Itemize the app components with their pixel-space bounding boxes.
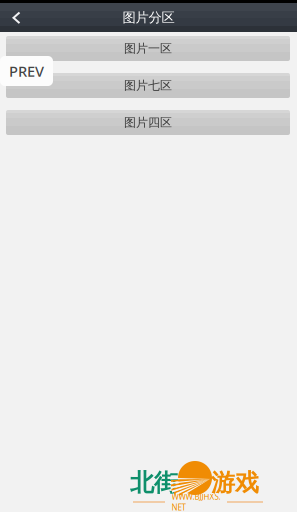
- staticText: 图片分区: [122, 9, 174, 26]
- staticText: 图片七区: [124, 78, 172, 93]
- staticText: 北街: [130, 468, 178, 497]
- button[interactable]: Back: [0, 3, 40, 32]
- button[interactable]: PREV: [0, 56, 53, 86]
- staticText: WWW.BJJHXS.NET: [171, 491, 220, 512]
- button[interactable]: 图片一区: [6, 36, 290, 61]
- button[interactable]: 图片四区: [6, 110, 290, 135]
- staticText: 图片一区: [124, 41, 172, 56]
- staticText: PREV: [9, 61, 44, 81]
- staticText: 游戏: [211, 468, 259, 497]
- staticText: 图片四区: [124, 115, 172, 130]
- button[interactable]: 图片七区: [6, 73, 290, 98]
